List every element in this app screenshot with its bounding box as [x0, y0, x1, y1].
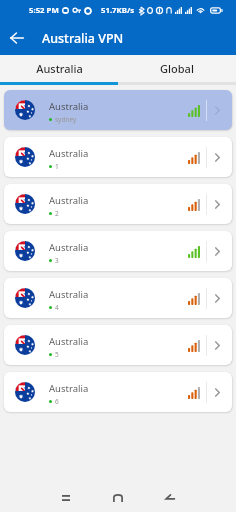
button[interactable]: Australia [4, 231, 232, 271]
staticText: Australia [49, 147, 89, 160]
staticText: Australia VPN [42, 30, 124, 47]
staticText: sydney [55, 115, 77, 124]
button[interactable]: Back [144, 484, 196, 512]
button[interactable]: Global [118, 55, 236, 82]
staticText: 5:52 PM [29, 5, 59, 16]
staticText: Australia [36, 61, 83, 76]
button[interactable]: Australia [4, 372, 232, 412]
staticText: Australia [49, 100, 89, 113]
button[interactable]: Back [0, 21, 34, 55]
button[interactable]: Australia [0, 55, 118, 82]
button[interactable]: Home [92, 484, 144, 512]
button[interactable]: Australia [4, 278, 232, 318]
button[interactable]: Recent apps [40, 484, 92, 512]
staticText: 3 [55, 256, 59, 265]
staticText: Australia [49, 382, 89, 395]
staticText: Global [160, 61, 194, 76]
staticText: Australia [49, 194, 89, 207]
staticText: 51.7KB/s [101, 5, 135, 16]
staticText: 1 [55, 162, 59, 171]
button[interactable]: Australia [4, 137, 232, 177]
staticText: 6 [55, 397, 59, 406]
staticText: 4 [55, 303, 59, 312]
staticText: 5 [55, 350, 59, 359]
staticText: 2 [55, 209, 59, 218]
staticText: Australia [49, 241, 89, 254]
button[interactable]: Australia [4, 184, 232, 224]
staticText: Australia [49, 288, 89, 301]
staticText: Australia [49, 335, 89, 348]
button[interactable]: Australia [4, 90, 232, 130]
button[interactable]: Australia [4, 325, 232, 365]
